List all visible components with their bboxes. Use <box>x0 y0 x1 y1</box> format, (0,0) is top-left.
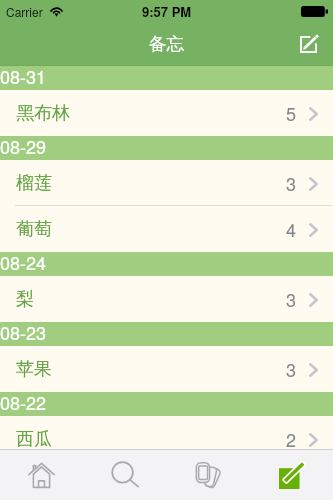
staticText: 4 <box>286 216 297 242</box>
button[interactable]: Search <box>83 450 166 500</box>
staticText: 西瓜 <box>16 428 52 451</box>
button[interactable]: 葡萄 <box>0 206 333 252</box>
staticText: 备忘 <box>149 33 184 55</box>
staticText: 08-24 <box>0 249 47 273</box>
button[interactable]: 梨 <box>0 276 333 322</box>
staticText: 3 <box>286 170 297 196</box>
button[interactable]: 榴莲 <box>0 160 333 206</box>
staticText: Carrier <box>6 3 43 20</box>
staticText: 3 <box>286 286 297 312</box>
staticText: 榴莲 <box>16 172 52 195</box>
button[interactable]: Notes <box>167 450 250 500</box>
staticText: 9:57 PM <box>142 2 192 21</box>
staticText: 葡萄 <box>16 218 52 241</box>
staticText: 2 <box>286 426 297 452</box>
button[interactable]: New note <box>250 450 333 500</box>
staticText: 3 <box>286 356 297 382</box>
staticText: 08-31 <box>0 63 47 87</box>
staticText: 08-22 <box>0 389 47 413</box>
button[interactable]: Home <box>0 450 83 500</box>
staticText: 08-29 <box>0 133 47 157</box>
staticText: 5 <box>286 100 297 126</box>
button[interactable]: 黑布林 <box>0 90 333 136</box>
button[interactable]: 苹果 <box>0 346 333 392</box>
staticText: 梨 <box>16 288 34 311</box>
staticText: 苹果 <box>16 358 52 381</box>
button[interactable]: Compose new memo <box>284 22 333 66</box>
staticText: 08-23 <box>0 319 47 343</box>
button[interactable]: 西瓜 <box>0 416 333 462</box>
staticText: 黑布林 <box>16 102 70 125</box>
